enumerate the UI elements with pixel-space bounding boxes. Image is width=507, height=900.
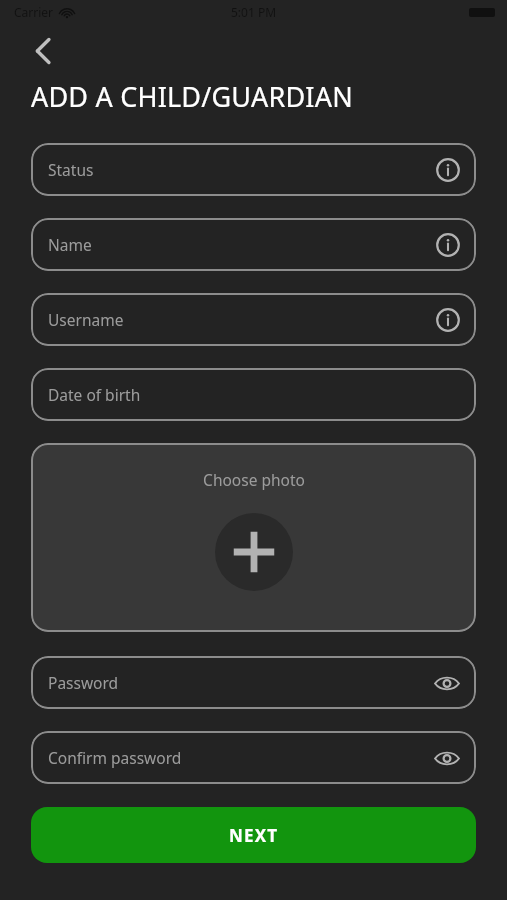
staticText: Carrier bbox=[14, 4, 54, 20]
button[interactable]: Confirm password bbox=[31, 731, 476, 784]
staticText: Status bbox=[48, 159, 435, 180]
staticText: Date of birth bbox=[48, 384, 461, 405]
button[interactable]: Show password bbox=[433, 744, 461, 772]
button[interactable]: Username bbox=[31, 293, 476, 346]
button[interactable]: NEXT bbox=[31, 807, 476, 863]
button[interactable]: Choose photo bbox=[31, 443, 476, 632]
button[interactable]: Add photo bbox=[215, 513, 293, 591]
button[interactable]: Status bbox=[31, 143, 476, 196]
button[interactable]: Info bbox=[435, 232, 461, 258]
button[interactable]: Date of birth bbox=[31, 368, 476, 421]
staticText: ADD A CHILD/GUARDIAN bbox=[31, 78, 353, 115]
staticText: Choose photo bbox=[203, 469, 305, 490]
staticText: 5:01 PM bbox=[231, 4, 277, 20]
staticText: Password bbox=[48, 672, 433, 693]
button[interactable]: Show password bbox=[433, 669, 461, 697]
staticText: Username bbox=[48, 309, 435, 330]
button[interactable]: Info bbox=[435, 307, 461, 333]
button[interactable]: Name bbox=[31, 218, 476, 271]
button[interactable]: Info bbox=[435, 157, 461, 183]
staticText: Name bbox=[48, 234, 435, 255]
staticText: Confirm password bbox=[48, 747, 433, 768]
staticText: NEXT bbox=[229, 824, 279, 847]
button[interactable]: Back bbox=[22, 30, 64, 72]
button[interactable]: Password bbox=[31, 656, 476, 709]
